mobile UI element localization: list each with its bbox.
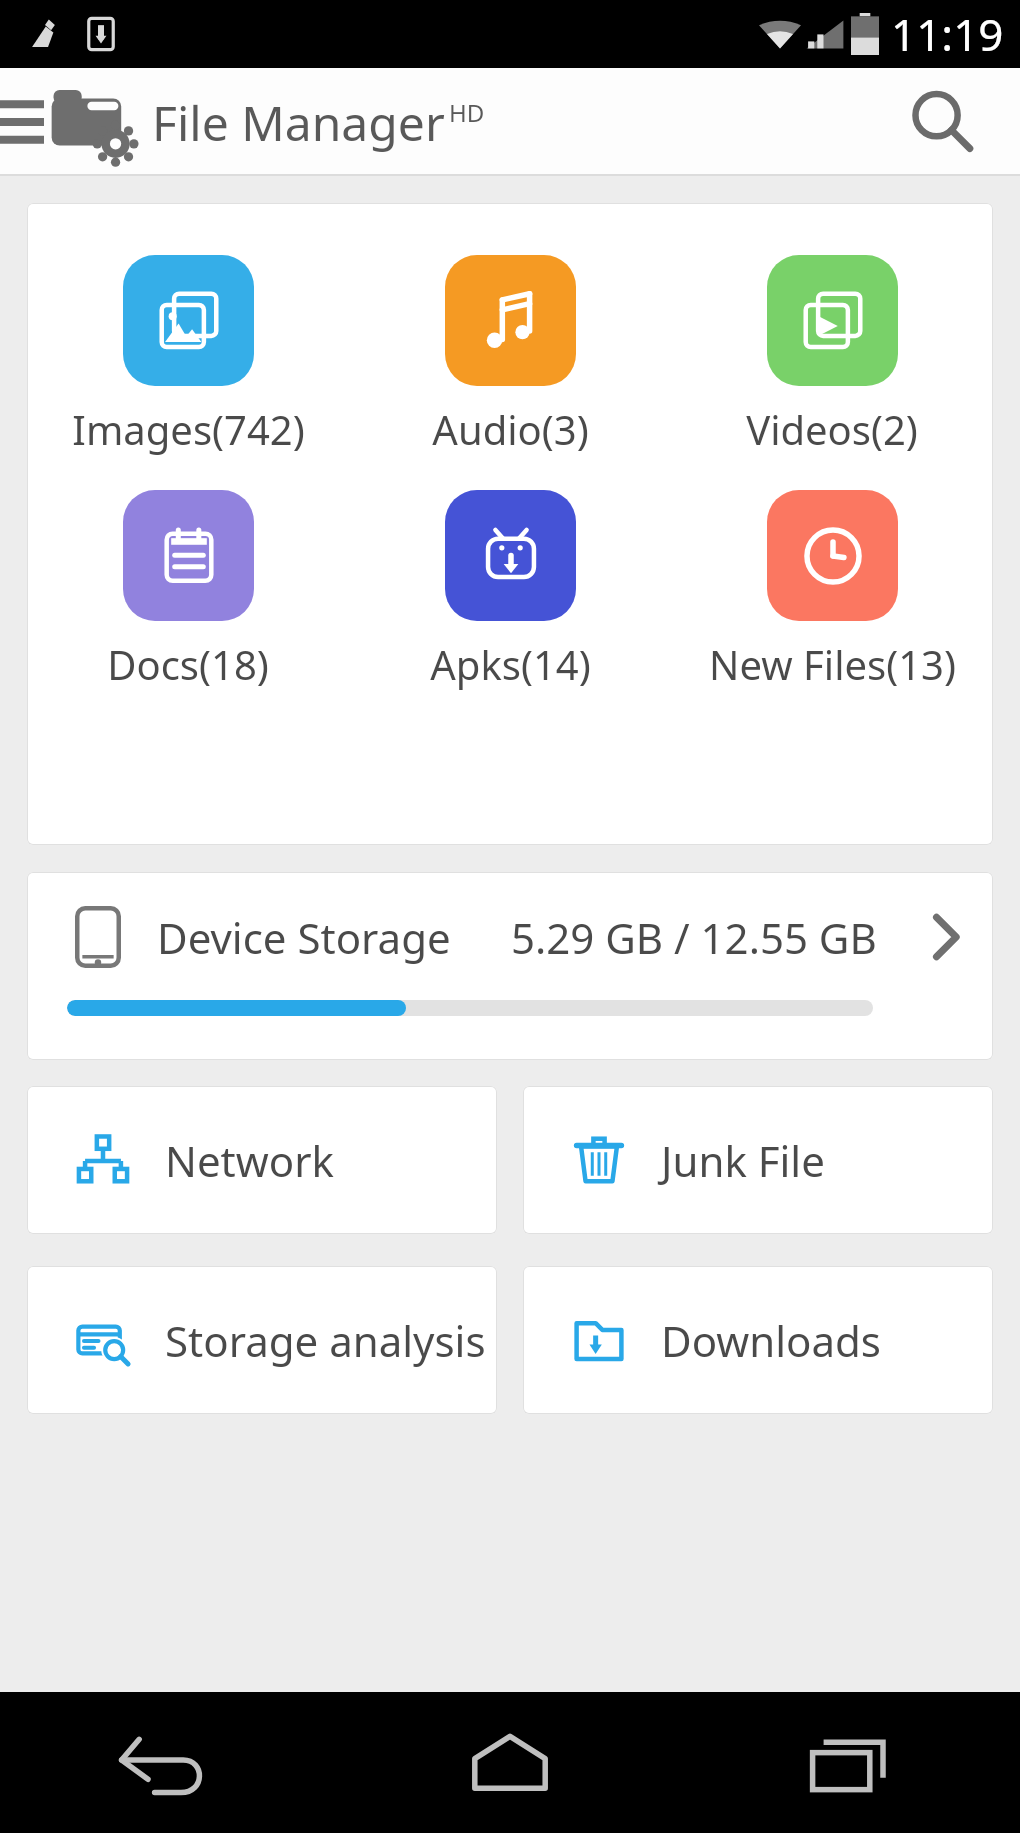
- staticText: Apks(14): [430, 637, 591, 691]
- staticText: New Files(13): [709, 637, 956, 691]
- button[interactable]: Storage analysis: [27, 1266, 497, 1414]
- button[interactable]: Audio(3): [349, 255, 671, 456]
- button[interactable]: Apks(14): [349, 490, 671, 691]
- staticText: Junk File: [661, 1132, 825, 1189]
- staticText: Network: [165, 1132, 334, 1189]
- button[interactable]: Recent apps: [680, 1692, 1020, 1833]
- button[interactable]: Home: [340, 1692, 680, 1833]
- button[interactable]: Device Storage: [27, 872, 993, 1060]
- staticText: HD: [449, 96, 485, 129]
- staticText: Downloads: [661, 1312, 881, 1369]
- button[interactable]: Network: [27, 1086, 497, 1234]
- button[interactable]: Videos(2): [671, 255, 993, 456]
- button[interactable]: Images(742): [27, 255, 349, 456]
- staticText: Videos(2): [746, 402, 918, 456]
- button[interactable]: Back: [0, 1692, 340, 1833]
- staticText: 11:19: [891, 4, 1004, 64]
- staticText: Storage analysis: [165, 1312, 486, 1369]
- button[interactable]: Open navigation menu: [0, 77, 44, 167]
- staticText: File Manager: [152, 90, 445, 155]
- button[interactable]: Docs(18): [27, 490, 349, 691]
- staticText: 5.29 GB / 12.55 GB: [511, 909, 877, 966]
- staticText: Device Storage: [157, 909, 451, 966]
- staticText: Docs(18): [107, 637, 269, 691]
- button[interactable]: Downloads: [523, 1266, 993, 1414]
- button[interactable]: New Files(13): [671, 490, 993, 691]
- button[interactable]: Search: [894, 74, 990, 170]
- button[interactable]: Junk File: [523, 1086, 993, 1234]
- staticText: Audio(3): [432, 402, 589, 456]
- staticText: Images(742): [72, 402, 305, 456]
